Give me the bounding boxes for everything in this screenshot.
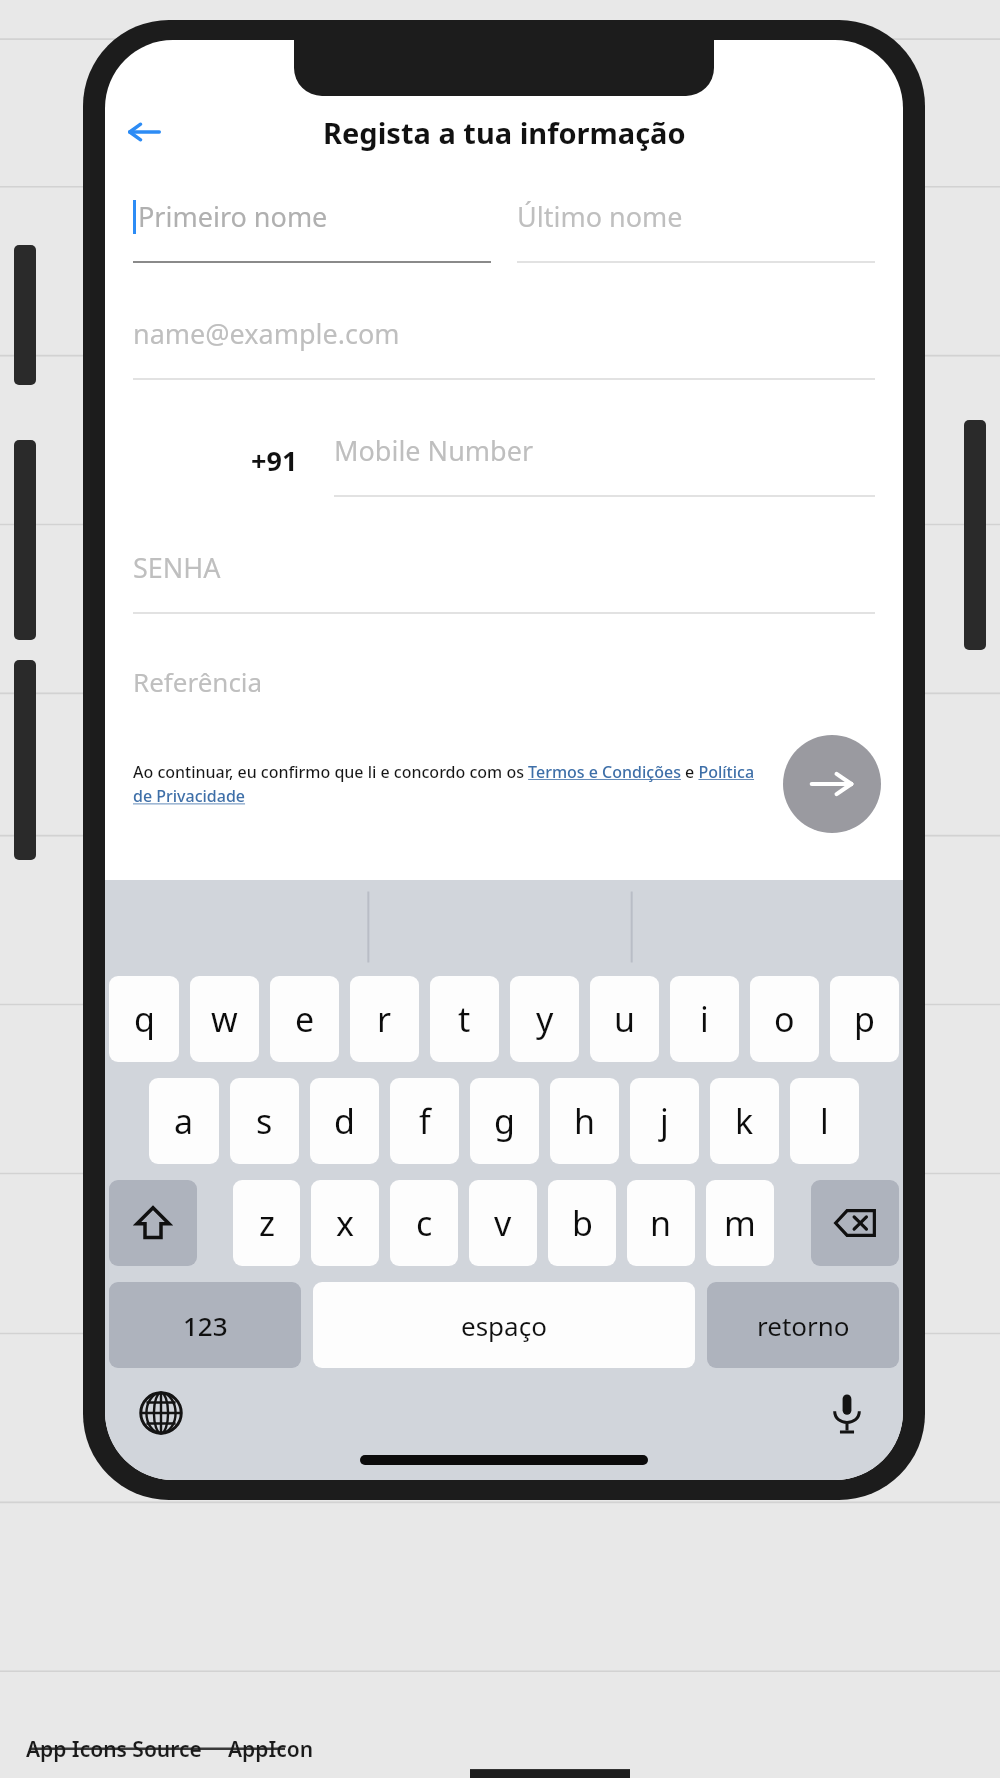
staticText: m [724,1200,756,1246]
button[interactable]: c [390,1180,458,1266]
button[interactable]: Continue [783,735,881,833]
button[interactable]: Shift [109,1180,197,1266]
staticText: Regista a tua informação [323,113,686,152]
button[interactable]: Numbers [109,1282,301,1368]
button[interactable]: w [190,976,259,1062]
staticText: b [572,1200,593,1246]
staticText: espaço [461,1308,547,1343]
staticText: name@example.com [133,315,400,352]
button[interactable]: SENHA [133,549,875,614]
staticText: z [259,1200,275,1246]
staticText: g [494,1098,515,1144]
staticText: u [614,996,636,1042]
button[interactable]: a [149,1078,219,1164]
button[interactable]: n [627,1180,695,1266]
staticText: App Icons Source [26,1735,202,1764]
button[interactable]: i [670,976,739,1062]
staticText: +91 [251,442,298,479]
staticText: Mobile Number [334,432,534,469]
button[interactable]: l [790,1078,859,1164]
staticText: f [419,1098,431,1144]
button[interactable]: b [548,1180,616,1266]
staticText: r [377,996,392,1042]
button[interactable]: v [469,1180,537,1266]
button[interactable]: name@example.com [133,315,875,380]
staticText: v [494,1200,512,1246]
staticText: Último nome [517,198,683,235]
button[interactable]: o [750,976,819,1062]
staticText: o [774,996,795,1042]
staticText: Ao continuar, eu confirmo que li e conco… [133,761,769,807]
button[interactable]: Space [313,1282,695,1368]
staticText: i [700,996,709,1042]
staticText: n [650,1200,672,1246]
button[interactable]: Return [707,1282,899,1368]
staticText: a [174,1098,194,1144]
button[interactable]: k [710,1078,779,1164]
staticText: t [458,996,471,1042]
button[interactable]: u [590,976,659,1062]
staticText: 123 [183,1308,228,1343]
button[interactable]: Último nome [517,198,875,263]
staticText: s [256,1098,273,1144]
staticText: retorno [757,1308,850,1343]
staticText: AppIcon [228,1735,314,1764]
button[interactable]: Backspace [811,1180,899,1266]
button[interactable]: p [830,976,899,1062]
button[interactable]: q [109,976,179,1062]
staticText: q [134,996,155,1042]
staticText: Primeiro nome [138,198,328,235]
button[interactable]: r [350,976,419,1062]
button[interactable]: Dictation [819,1386,875,1440]
button[interactable]: t [430,976,499,1062]
staticText: x [336,1200,354,1246]
staticText: w [211,996,238,1042]
button[interactable]: d [310,1078,379,1164]
button[interactable]: f [390,1078,459,1164]
button[interactable]: g [470,1078,539,1164]
button[interactable]: e [270,976,339,1062]
staticText: y [536,996,554,1042]
staticText: j [660,1098,669,1144]
button[interactable]: z [233,1180,300,1266]
button[interactable]: m [706,1180,774,1266]
button[interactable]: Primeiro nome [133,198,491,263]
staticText: e [295,996,315,1042]
staticText: d [334,1098,355,1144]
button[interactable]: h [550,1078,619,1164]
staticText: p [854,996,875,1042]
staticText: k [735,1098,754,1144]
button[interactable]: y [510,976,579,1062]
staticText: c [416,1200,433,1246]
button[interactable]: s [230,1078,299,1164]
staticText: Referência [133,664,263,699]
staticText: SENHA [133,549,221,586]
button[interactable]: Mobile Number [334,432,875,497]
staticText: l [820,1098,829,1144]
button[interactable]: j [630,1078,699,1164]
button[interactable]: Change keyboard [133,1386,189,1440]
staticText: h [574,1098,596,1144]
button[interactable]: Ao continuar, eu confirmo que li e conco… [133,761,769,807]
button[interactable]: x [311,1180,379,1266]
button[interactable]: Back [117,105,171,159]
